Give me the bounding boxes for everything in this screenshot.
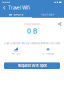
- button[interactable]: Back: [1, 5, 7, 11]
- staticText: 0 B: [27, 28, 37, 35]
- button[interactable]: HISTORY: [32, 13, 64, 17]
- staticText: Order a Wifi spot and stay connected any…: [3, 42, 60, 45]
- button[interactable]: Request Wifi Spot: [4, 62, 60, 69]
- staticText: DATA USED THIS MONTH: [23, 23, 40, 27]
- staticText: 10 devices: [42, 52, 54, 55]
- button[interactable]: MY SPOTS: [0, 13, 32, 17]
- staticText: HISTORY: [41, 13, 54, 16]
- staticText: 4G LTE: [11, 52, 20, 55]
- staticText: Travel Wifi: [8, 5, 30, 10]
- staticText: Request Wifi Spot: [17, 63, 46, 68]
- button[interactable]: Share: [57, 21, 63, 27]
- staticText: MY SPOTS: [8, 13, 23, 16]
